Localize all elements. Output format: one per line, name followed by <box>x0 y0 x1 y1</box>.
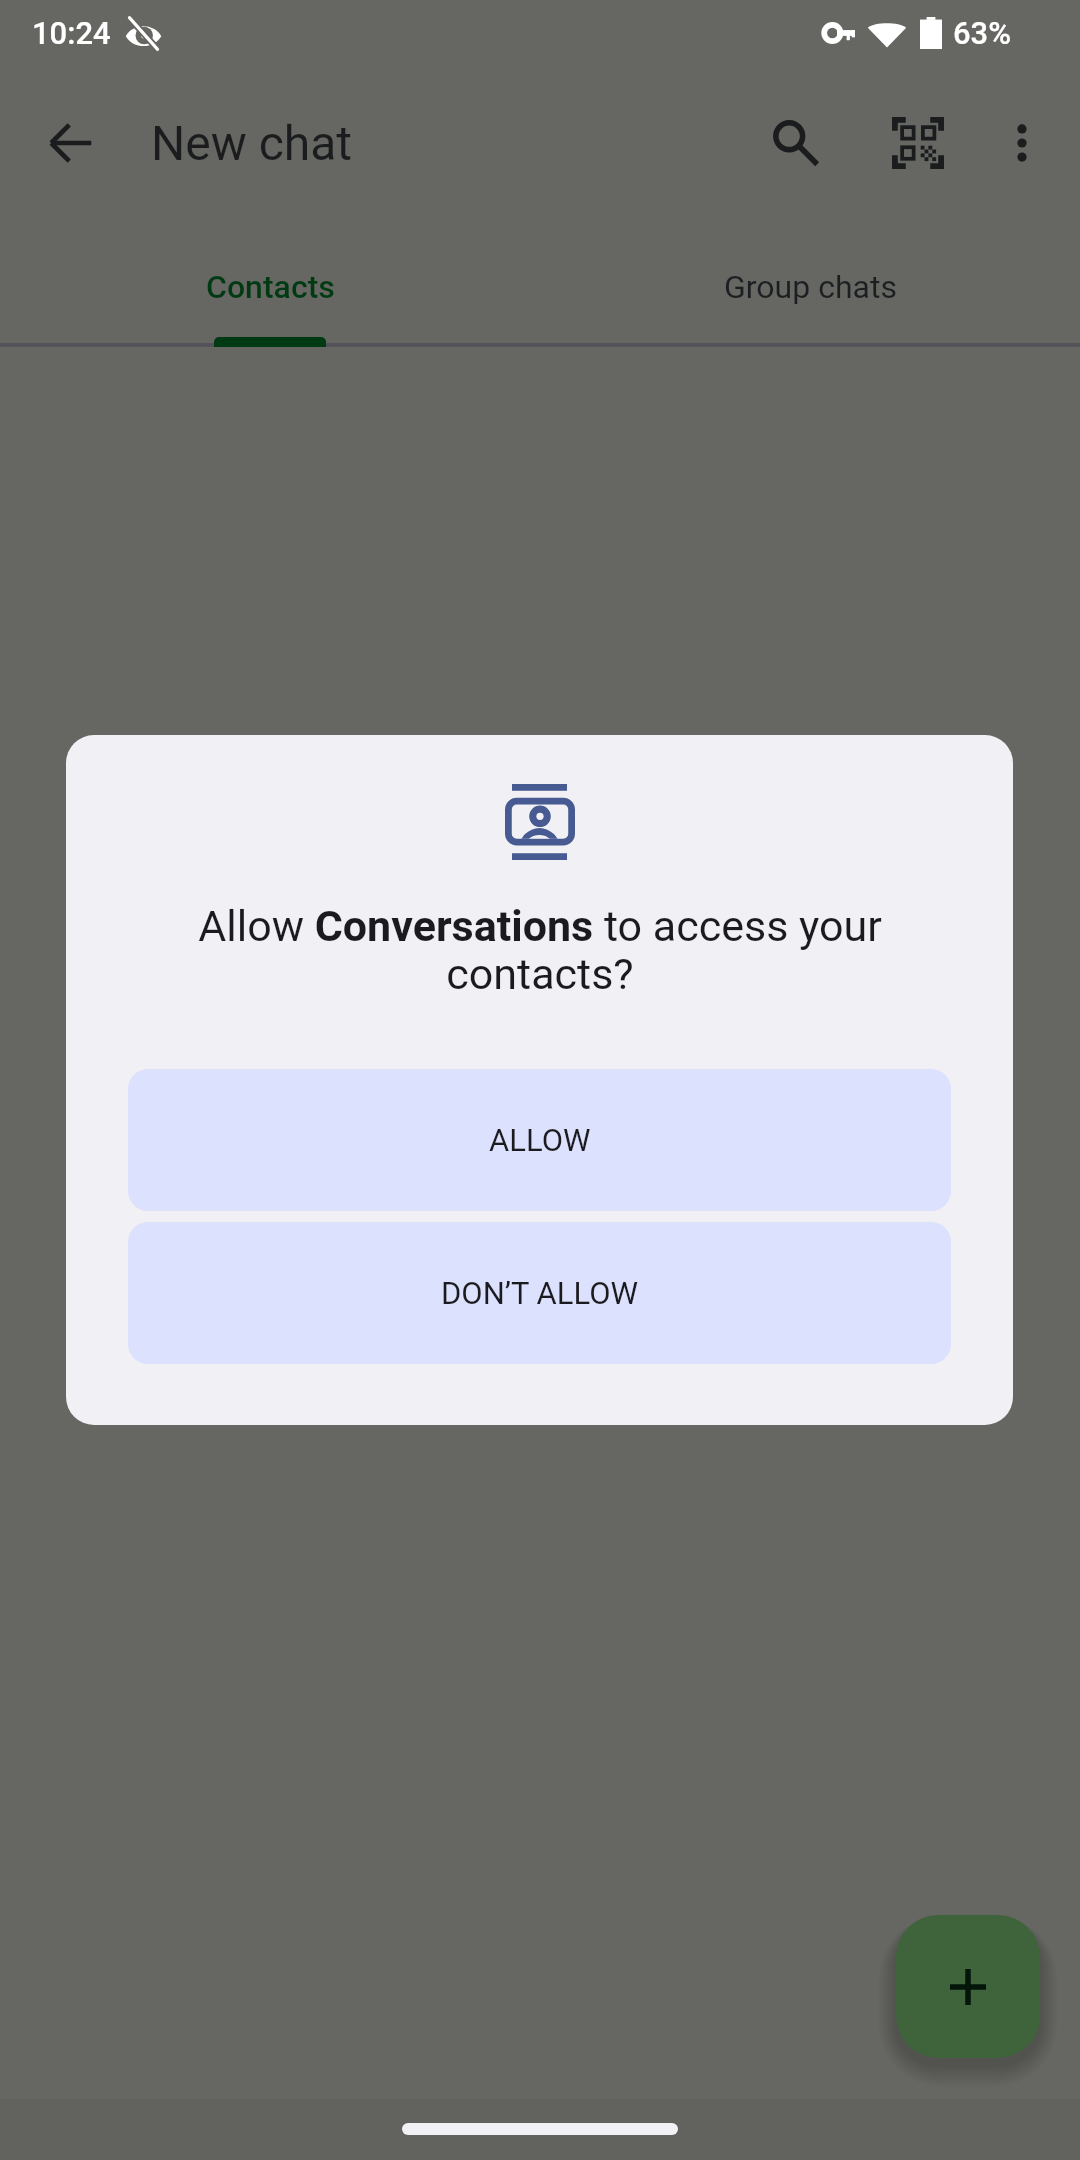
staticText: DON’T ALLOW <box>441 1275 639 1311</box>
button[interactable]: ALLOW <box>128 1069 951 1211</box>
button[interactable]: DON’T ALLOW <box>128 1222 951 1364</box>
staticText: 10:24 <box>32 15 111 51</box>
button[interactable]: Back <box>23 95 119 191</box>
staticText: New chat <box>151 115 353 171</box>
button[interactable]: Scan QR code <box>868 93 968 193</box>
button[interactable]: Contacts <box>0 232 540 342</box>
staticText: 63% <box>953 15 1012 51</box>
staticText: Allow Conversations to access your conta… <box>160 901 920 999</box>
button[interactable]: More options <box>976 97 1068 189</box>
button[interactable]: Group chats <box>540 232 1080 342</box>
staticText: Group chats <box>724 268 897 306</box>
staticText: Contacts <box>206 268 335 306</box>
staticText: ALLOW <box>489 1122 591 1158</box>
button[interactable]: Search <box>746 93 846 193</box>
button[interactable]: New chat <box>896 1915 1040 2058</box>
